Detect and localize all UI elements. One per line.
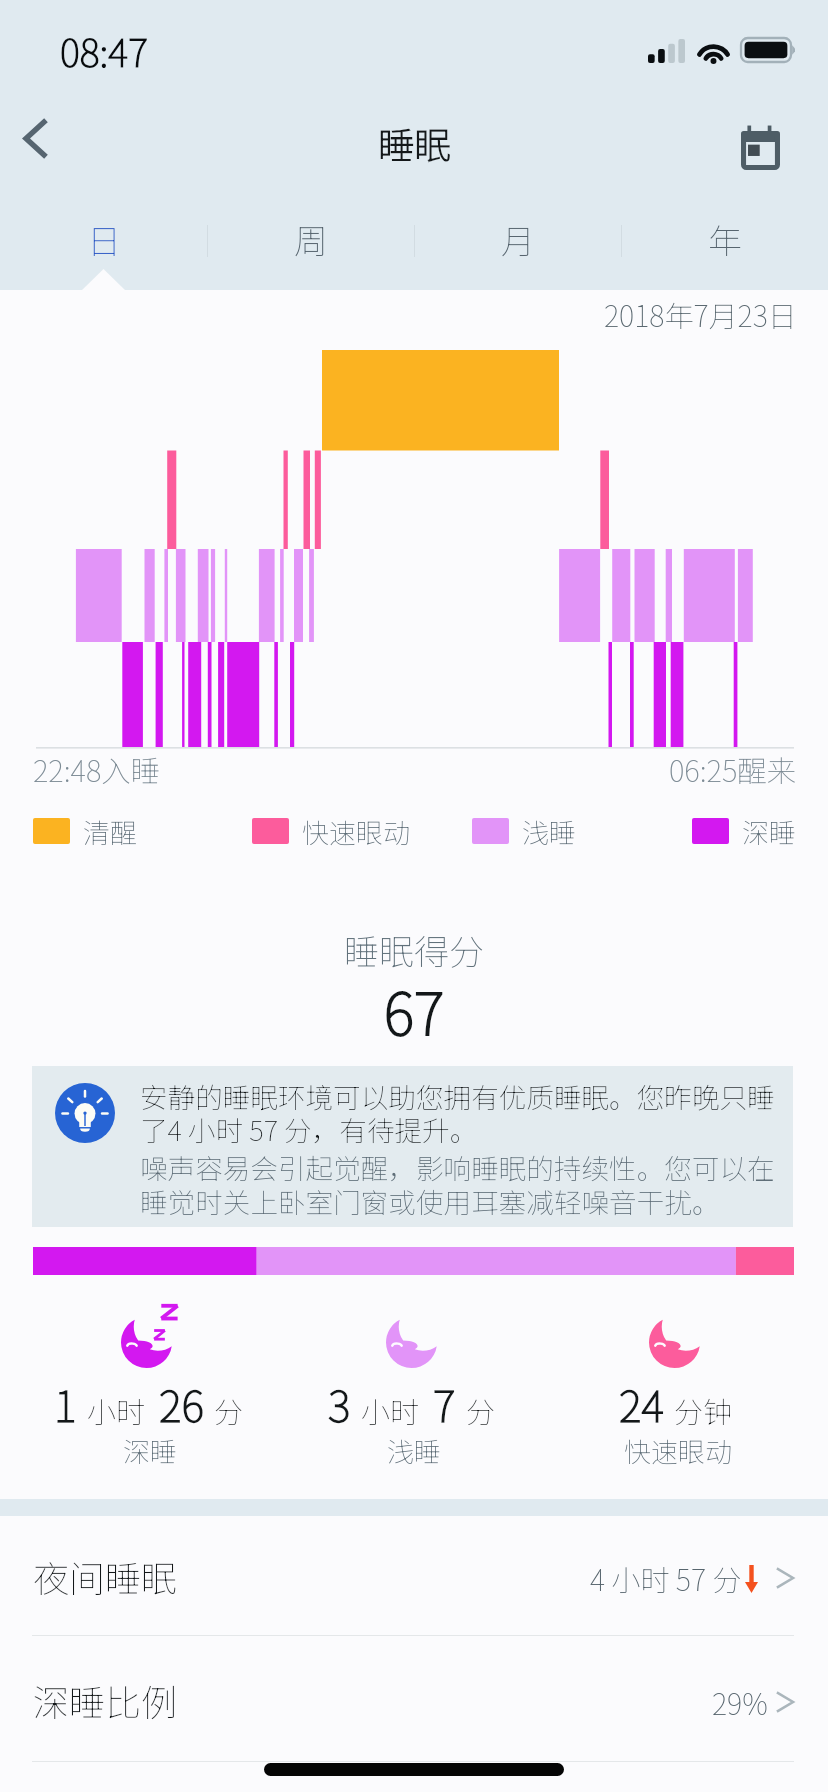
staticText: 噪声容易会引起觉醒，影响睡眠的持续性。您可以在 睡觉时关上卧室门窗或使用耳塞减轻… [140, 1147, 800, 1221]
button[interactable]: 年 [621, 196, 828, 290]
button[interactable]: Sleep stage [385, 1317, 438, 1368]
staticText: 分 [214, 1389, 244, 1431]
staticText: 7 [433, 1372, 456, 1434]
staticText: 年 [708, 215, 742, 264]
button[interactable]: 1 [0, 1372, 299, 1434]
button[interactable] [0, 1637, 828, 1761]
staticText: 3 [328, 1372, 351, 1434]
button[interactable]: 日 [0, 196, 207, 290]
staticText: 08:47 [60, 23, 148, 78]
staticText: 安静的睡眠环境可以助您拥有优质睡眠。您昨晚只睡 了4 小时 57 分，有待提升。 [140, 1076, 800, 1149]
button[interactable]: Calendar [714, 101, 806, 193]
staticText: 睡眠得分 [0, 924, 828, 975]
button[interactable]: 周 [207, 196, 414, 290]
staticText: 深睡比例 [33, 1674, 178, 1726]
staticText: 26 [159, 1372, 204, 1434]
staticText: 67 [0, 968, 828, 1052]
staticText: 清醒 [83, 812, 137, 851]
button[interactable]: Back [0, 92, 81, 184]
staticText: 29% [712, 1681, 768, 1723]
button[interactable]: Sleep stage [121, 1305, 183, 1368]
staticText: 分 [466, 1389, 496, 1431]
staticText: 22:48入睡 [33, 748, 161, 791]
staticText: 分钟 [674, 1389, 733, 1431]
staticText: 24 [619, 1372, 664, 1434]
staticText: 夜间睡眠 [33, 1550, 178, 1602]
staticText: 小时 [361, 1389, 420, 1431]
staticText: 月 [501, 215, 535, 264]
staticText: 小时 [87, 1389, 146, 1431]
button[interactable]: 月 [414, 196, 621, 290]
staticText: 06:25醒来 [669, 748, 797, 791]
button[interactable]: 3 [262, 1372, 562, 1434]
staticText: 深睡 [0, 1431, 300, 1470]
button[interactable]: Sleep stage [648, 1317, 701, 1368]
staticText: 2018年7月23日 [604, 293, 797, 335]
staticText: 1 [54, 1372, 77, 1434]
staticText: 深睡 [742, 812, 796, 851]
button[interactable]: 24 [526, 1372, 826, 1434]
staticText: 周 [294, 215, 328, 264]
staticText: 日 [87, 215, 121, 264]
staticText: 快速眼动 [302, 812, 410, 851]
staticText: 浅睡 [522, 812, 576, 851]
button[interactable] [0, 1516, 828, 1635]
staticText: 4 小时 57 分 [590, 1557, 742, 1599]
staticText: 浅睡 [264, 1431, 564, 1470]
staticText: 快速眼动 [528, 1431, 828, 1470]
staticText: 睡眠 [378, 117, 451, 170]
